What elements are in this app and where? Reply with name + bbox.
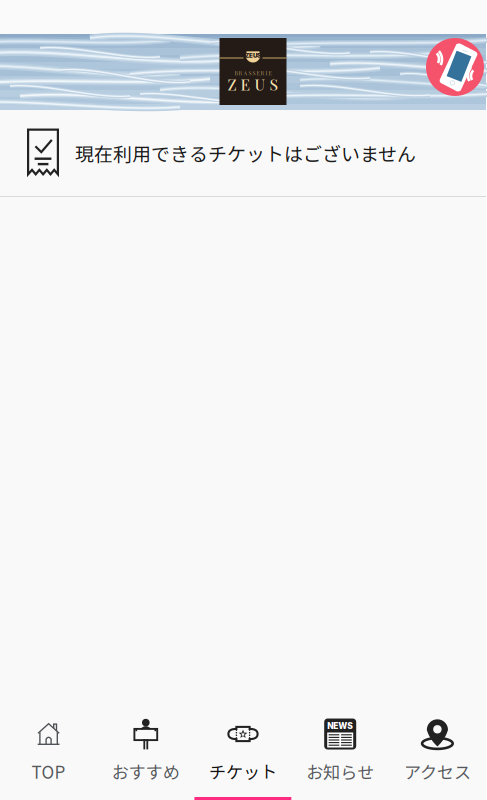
button[interactable]: 電話で予約 [426, 43, 484, 101]
button[interactable]: チケット [194, 718, 292, 800]
button[interactable]: おすすめ [97, 718, 194, 800]
staticText: TOP [32, 759, 66, 784]
staticText: ZEUS [245, 52, 261, 59]
staticText: アクセス [404, 759, 471, 784]
staticText: 現在利用できるチケットはございません [75, 139, 416, 167]
staticText: おすすめ [112, 759, 180, 784]
button[interactable]: TOP [0, 718, 97, 800]
staticText: チケット [209, 759, 277, 784]
staticText: Z E U S [227, 74, 278, 94]
button[interactable]: アクセス [389, 718, 486, 800]
staticText: NEWS [327, 721, 353, 731]
button[interactable]: NEWS [292, 718, 389, 800]
staticText: お知らせ [306, 759, 374, 784]
staticText: B R A S S E R I E [234, 69, 271, 77]
